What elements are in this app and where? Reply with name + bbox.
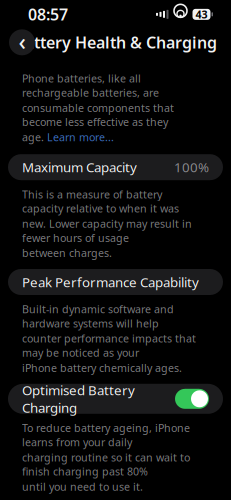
- staticText: Built-in dynamic software and hardware s…: [22, 302, 174, 330]
- staticText: consumable components that become less e…: [22, 101, 174, 129]
- staticText: Optimised Battery Charging: [22, 381, 135, 416]
- staticText: Battery Health & Charging: [14, 32, 217, 53]
- button[interactable]: Optimised Battery Charging: [8, 384, 223, 414]
- staticText: Maximum Capacity: [22, 158, 137, 176]
- staticText: counter performance impacts that may be …: [22, 331, 196, 360]
- staticText: This is a measure of battery capacity re…: [22, 187, 179, 215]
- staticText: charging routine so it can wait to finis…: [22, 450, 190, 478]
- staticText: new. Lower capacity may result in fewer …: [22, 216, 192, 245]
- staticText: ‹: [18, 26, 25, 56]
- staticText: To reduce battery ageing, iPhone learns …: [22, 421, 190, 449]
- staticText: between charges.: [22, 246, 112, 260]
- staticText: Learn more...: [47, 130, 114, 144]
- staticText: Phone batteries, like all rechargeable b…: [22, 71, 159, 100]
- button[interactable]: Learn more...: [47, 130, 114, 144]
- staticText: Peak Performance Capability: [22, 273, 199, 291]
- staticText: iPhone battery chemically ages.: [22, 361, 182, 375]
- button[interactable]: Peak Performance Capability: [8, 269, 223, 295]
- staticText: until you need to use it.: [22, 479, 143, 494]
- staticText: 43: [195, 7, 207, 21]
- button[interactable]: Maximum Capacity: [8, 154, 223, 180]
- staticText: 100%: [174, 158, 209, 176]
- staticText: age.: [22, 130, 47, 144]
- button[interactable]: Back: [7, 27, 37, 57]
- staticText: 08:57: [28, 4, 68, 25]
